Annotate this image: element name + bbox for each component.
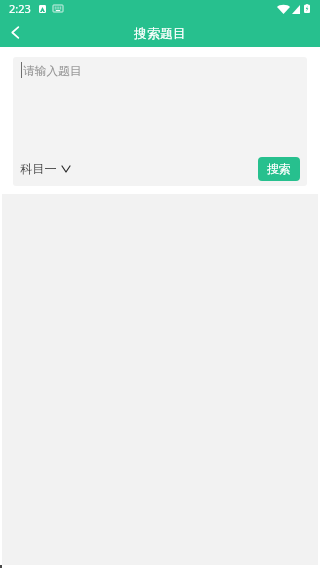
button[interactable]: 请输入题目 (13, 57, 307, 153)
staticText: 2:23 (9, 1, 31, 16)
button[interactable]: 科目一 (19, 158, 71, 179)
staticText: 搜索题目 (134, 25, 186, 41)
staticText: 搜索 (267, 161, 291, 176)
button[interactable]: Back (0, 18, 30, 47)
button[interactable]: 搜索 (258, 157, 300, 181)
staticText: 科目一 (20, 161, 57, 176)
staticText: 请输入题目 (23, 64, 82, 79)
